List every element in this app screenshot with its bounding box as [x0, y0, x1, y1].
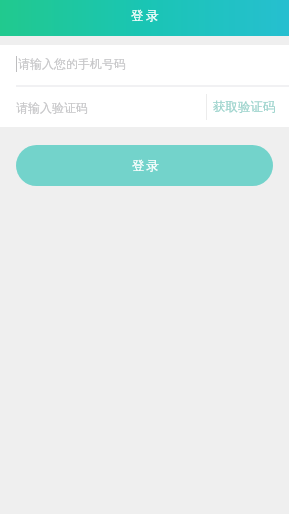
staticText: 获取验证码 [213, 99, 276, 115]
staticText: 登录 [132, 158, 160, 174]
button[interactable]: 请输入您的手机号码 [0, 45, 289, 85]
button[interactable]: 获取验证码 [207, 87, 289, 127]
staticText: 请输入您的手机号码 [18, 56, 126, 71]
staticText: 请输入验证码 [16, 100, 88, 115]
button[interactable]: 请输入验证码 [0, 87, 206, 127]
staticText: 登录 [131, 8, 161, 24]
button[interactable]: 登录 [16, 145, 273, 186]
